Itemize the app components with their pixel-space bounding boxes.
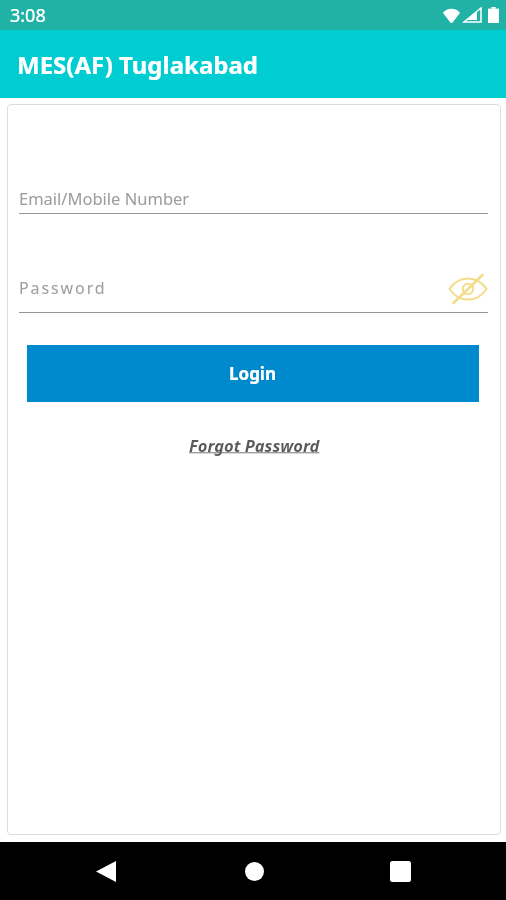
- button[interactable]: Password: [19, 274, 449, 304]
- staticText: Email/Mobile Number: [19, 187, 190, 209]
- button[interactable]: Recent apps: [370, 842, 430, 900]
- button[interactable]: Home: [224, 842, 284, 900]
- staticText: MES(AF) Tuglakabad: [17, 48, 258, 81]
- button[interactable]: Login: [27, 345, 479, 402]
- button[interactable]: Show password: [439, 269, 496, 309]
- staticText: 3:08: [10, 3, 46, 28]
- button[interactable]: Forgot Password: [189, 434, 320, 456]
- staticText: Login: [229, 362, 277, 385]
- button[interactable]: Email/Mobile Number: [19, 184, 488, 214]
- staticText: Password: [19, 277, 107, 299]
- button[interactable]: Back: [76, 842, 136, 900]
